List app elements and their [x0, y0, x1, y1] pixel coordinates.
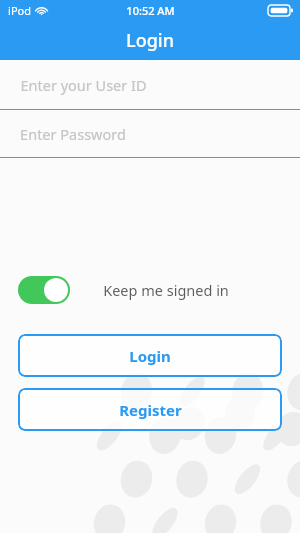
- staticText: Login: [126, 28, 174, 53]
- staticText: Enter Password: [20, 124, 126, 144]
- staticText: Keep me signed in: [103, 280, 229, 300]
- button[interactable]: Enter your User ID: [0, 60, 300, 109]
- staticText: Enter your User ID: [20, 75, 147, 95]
- button[interactable]: Keep me signed in toggle: [18, 276, 70, 304]
- button[interactable]: Enter Password: [0, 110, 300, 157]
- staticText: Login: [129, 346, 171, 366]
- staticText: 10:52 AM: [126, 3, 175, 18]
- button[interactable]: Login: [18, 334, 282, 377]
- staticText: iPod: [8, 3, 31, 18]
- button[interactable]: Register: [18, 388, 282, 431]
- staticText: Register: [119, 400, 182, 420]
